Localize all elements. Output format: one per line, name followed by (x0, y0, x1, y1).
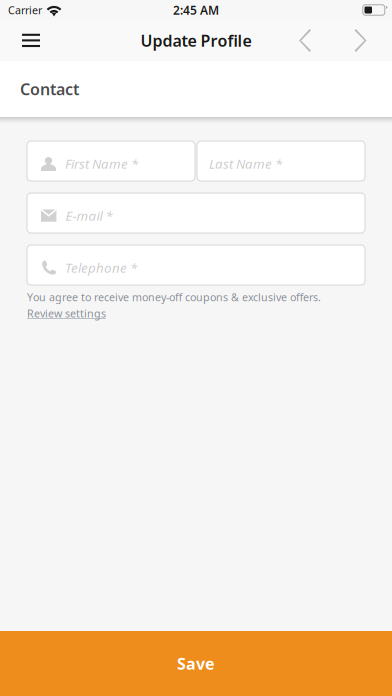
staticText: Last Name * (209, 155, 282, 172)
staticText: Update Profile (140, 30, 251, 51)
staticText: Review settings (27, 306, 106, 320)
staticText: Carrier (8, 3, 42, 17)
button[interactable]: Forward (340, 20, 382, 61)
staticText: 2:45 AM (173, 2, 219, 18)
staticText: First Name * (65, 155, 138, 172)
staticText: You agree to receive money-off coupons &… (27, 290, 321, 304)
staticText: Telephone * (65, 259, 137, 276)
button[interactable]: Review settings (27, 306, 106, 320)
button[interactable]: Back (271, 20, 340, 61)
staticText: Save (177, 653, 215, 674)
staticText: E-mail * (65, 207, 112, 224)
button[interactable]: Save (0, 631, 392, 696)
button[interactable]: Menu (9, 20, 53, 61)
staticText: Contact (20, 78, 79, 100)
